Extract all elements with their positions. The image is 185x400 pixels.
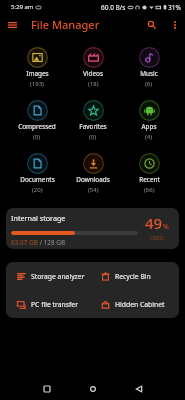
staticText: Hidden Cabinet <box>115 300 165 309</box>
button[interactable]: Compressed <box>9 100 65 153</box>
staticText: 63.07 GB <box>11 238 38 247</box>
staticText: (6) <box>145 80 153 88</box>
staticText: File Manager <box>31 17 100 32</box>
staticText: 31% <box>168 3 181 12</box>
button[interactable]: Storage analyzer <box>6 262 90 290</box>
staticText: % <box>163 222 169 232</box>
staticText: (0) <box>33 133 41 141</box>
button[interactable]: Apps <box>121 100 177 153</box>
staticText: Favorites <box>79 122 107 131</box>
button[interactable]: Home <box>81 378 104 400</box>
staticText: (20) <box>32 186 43 194</box>
button[interactable]: PC file transfer <box>6 290 90 318</box>
button[interactable]: Internal storage <box>6 208 179 249</box>
staticText: (54) <box>88 186 99 194</box>
button[interactable]: Images <box>9 47 65 100</box>
staticText: Music <box>140 69 158 78</box>
button[interactable]: Search <box>143 16 160 33</box>
button[interactable]: Recent <box>121 153 177 206</box>
staticText: Images <box>26 69 49 78</box>
staticText: (0) <box>89 133 97 141</box>
staticText: Recent <box>139 175 160 184</box>
button[interactable]: Hidden Cabinet <box>90 290 179 318</box>
staticText: (66) <box>144 186 155 194</box>
staticText: Videos <box>83 69 103 78</box>
staticText: USED <box>150 234 165 241</box>
staticText: / 128 GB <box>38 238 66 247</box>
staticText: Downloads <box>76 175 110 184</box>
button[interactable]: Favorites <box>65 100 121 153</box>
staticText: (4) <box>145 133 153 141</box>
button[interactable]: Downloads <box>65 153 121 206</box>
staticText: Compressed <box>18 122 56 131</box>
staticText: Internal storage <box>11 213 66 223</box>
button[interactable]: Videos <box>65 47 121 100</box>
staticText: Apps <box>141 122 157 131</box>
button[interactable]: Back <box>127 378 150 400</box>
staticText: 60.0 B/s <box>101 3 126 12</box>
staticText: 5:29 am <box>11 3 34 11</box>
staticText: (18) <box>88 80 99 88</box>
staticText: PC file transfer <box>31 300 78 309</box>
staticText: 49 <box>145 213 163 233</box>
staticText: (193) <box>30 80 44 88</box>
button[interactable]: Recents <box>35 378 58 400</box>
staticText: Documents <box>20 175 55 184</box>
staticText: Recycle Bin <box>115 272 151 281</box>
button[interactable]: More options <box>166 16 183 33</box>
staticText: Storage analyzer <box>31 272 85 281</box>
button[interactable]: Recycle Bin <box>90 262 179 290</box>
button[interactable]: Music <box>121 47 177 100</box>
button[interactable]: Documents <box>9 153 65 206</box>
button[interactable]: Menu <box>4 16 21 33</box>
